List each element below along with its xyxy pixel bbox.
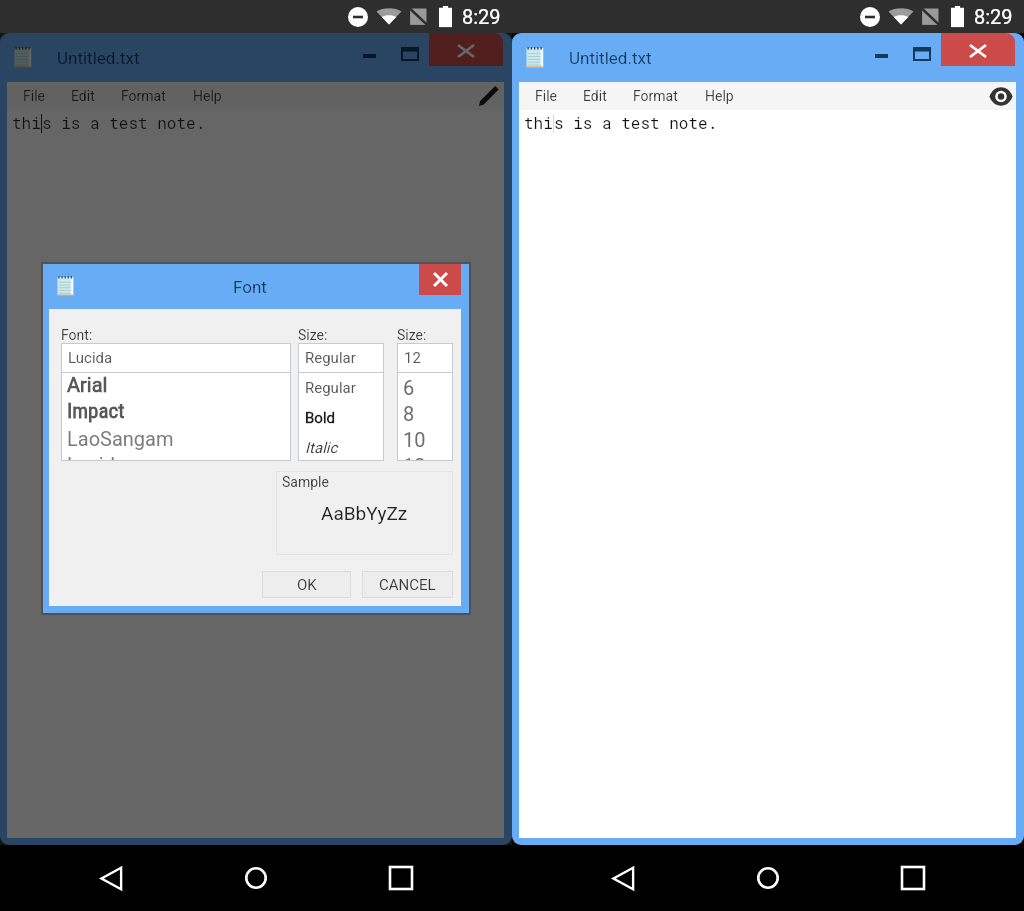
- button[interactable]: Home: [739, 849, 797, 907]
- staticText: Help: [193, 88, 222, 104]
- button[interactable]: Close dialog: [419, 264, 461, 295]
- staticText: s is a test note.: [554, 112, 718, 133]
- button[interactable]: Preview: [986, 82, 1016, 110]
- staticText: Lucida: [68, 349, 113, 367]
- staticText: Edit: [583, 88, 607, 104]
- staticText: Sample: [282, 474, 329, 490]
- button[interactable]: Minimise: [855, 33, 901, 82]
- button[interactable]: Recents: [882, 849, 940, 907]
- staticText: Format: [633, 88, 678, 104]
- button[interactable]: OK: [262, 571, 351, 598]
- staticText: Font:: [61, 327, 93, 343]
- staticText: Bold: [305, 409, 336, 427]
- staticText: Untitled.txt: [569, 48, 652, 68]
- staticText: Untitled.txt: [57, 48, 140, 68]
- staticText: Impact: [67, 399, 125, 424]
- button[interactable]: Format: [121, 88, 166, 104]
- staticText: 12: [404, 349, 421, 367]
- staticText: Edit: [71, 88, 95, 104]
- button[interactable]: Help: [705, 88, 734, 104]
- button[interactable]: Home: [227, 849, 285, 907]
- staticText: File: [535, 88, 557, 104]
- staticText: thi: [524, 112, 553, 133]
- staticText: Lucida: [67, 453, 126, 461]
- staticText: Format: [121, 88, 166, 104]
- staticText: LaoSangam: [67, 427, 174, 450]
- staticText: OK: [297, 576, 317, 594]
- button[interactable]: Close: [941, 33, 1015, 66]
- button[interactable]: Maximise: [901, 33, 941, 82]
- staticText: 6: [403, 376, 415, 399]
- staticText: 8:29: [974, 5, 1013, 28]
- staticText: 12: [403, 454, 426, 461]
- staticText: Regular: [305, 349, 356, 367]
- button[interactable]: File: [535, 88, 557, 104]
- staticText: 10: [403, 428, 426, 451]
- button[interactable]: Close: [429, 33, 503, 66]
- staticText: Arial: [67, 373, 108, 396]
- button[interactable]: File: [23, 88, 45, 104]
- button[interactable]: CANCEL: [362, 571, 453, 598]
- staticText: Italic: [305, 439, 338, 457]
- button[interactable]: Edit note: [474, 82, 504, 110]
- button[interactable]: Recents: [370, 849, 428, 907]
- staticText: Size:: [397, 327, 427, 343]
- staticText: Size:: [298, 327, 328, 343]
- staticText: CANCEL: [379, 576, 436, 594]
- button[interactable]: Back: [85, 849, 143, 907]
- button[interactable]: Format: [633, 88, 678, 104]
- button[interactable]: Help: [193, 88, 222, 104]
- button[interactable]: Maximise: [389, 33, 429, 82]
- staticText: s is a test note.: [42, 112, 206, 133]
- button[interactable]: Back: [597, 849, 655, 907]
- staticText: 8: [403, 402, 415, 425]
- staticText: File: [23, 88, 45, 104]
- staticText: thi: [12, 112, 41, 133]
- staticText: Regular: [305, 379, 356, 397]
- button[interactable]: Edit: [71, 88, 95, 104]
- staticText: 8:29: [462, 5, 501, 28]
- staticText: Font: [233, 277, 267, 297]
- staticText: Help: [705, 88, 734, 104]
- button[interactable]: Edit: [583, 88, 607, 104]
- staticText: AaBbYyZz: [321, 502, 408, 524]
- button[interactable]: Minimise: [343, 33, 389, 82]
